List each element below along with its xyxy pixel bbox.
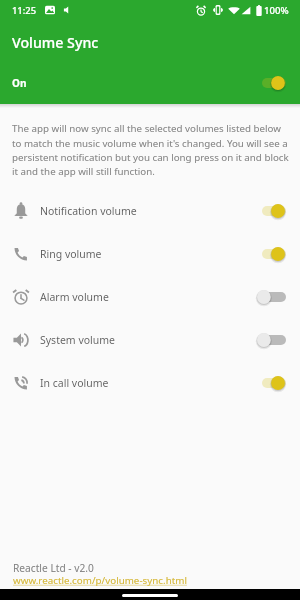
staticText: Alarm volume [40, 290, 109, 304]
staticText: Notification volume [40, 204, 137, 218]
staticText: Reactle Ltd - v2.0 [13, 561, 94, 575]
staticText: System volume [40, 333, 116, 347]
button[interactable]: On [0, 69, 300, 97]
staticText: 11:25 [12, 4, 37, 17]
button[interactable]: Ring volume [0, 232, 300, 275]
button[interactable]: Alarm volume [0, 275, 300, 318]
button[interactable]: www.reactle.com/p/volume-sync.html [13, 574, 187, 587]
staticText: In call volume [40, 376, 109, 390]
staticText: On [12, 76, 27, 90]
staticText: 100% [264, 4, 289, 17]
button[interactable]: System volume [0, 318, 300, 361]
staticText: The app will now sync all the selected v… [12, 122, 292, 178]
button[interactable]: In call volume [0, 361, 300, 404]
button[interactable]: Notification volume [0, 189, 300, 232]
staticText: Ring volume [40, 247, 102, 261]
staticText: Volume Sync [12, 33, 99, 52]
